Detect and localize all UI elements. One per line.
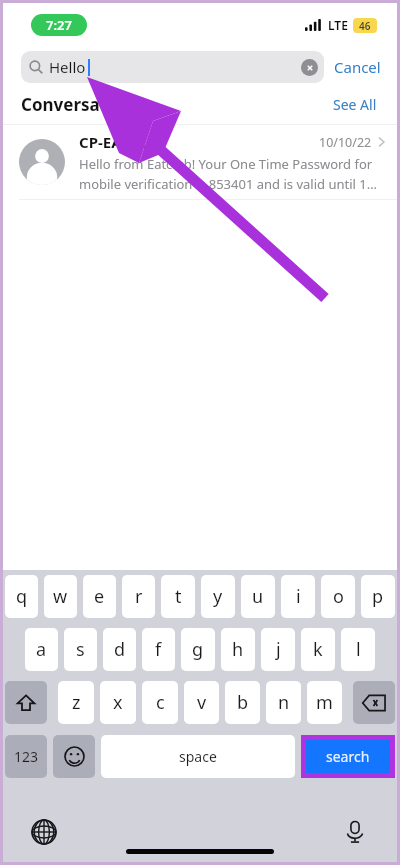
staticText: a: [36, 637, 47, 662]
button[interactable]: w: [44, 575, 77, 618]
button[interactable]: f: [142, 628, 175, 671]
staticText: r: [135, 584, 143, 609]
button[interactable]: search: [306, 740, 390, 773]
staticText: l: [356, 637, 361, 662]
staticText: search: [326, 747, 370, 766]
button[interactable]: Change keyboard language: [31, 819, 57, 845]
staticText: f: [155, 637, 162, 662]
button[interactable]: k: [301, 628, 335, 671]
button[interactable]: y: [201, 575, 235, 618]
button[interactable]: s: [64, 628, 97, 671]
staticText: mobile verification is 853401 and is val…: [79, 175, 377, 193]
staticText: g: [192, 637, 204, 662]
staticText: p: [372, 584, 384, 609]
button[interactable]: Emoji: [53, 735, 95, 778]
staticText: 7:27: [46, 16, 72, 34]
staticText: j: [276, 637, 281, 662]
button[interactable]: Backspace: [353, 681, 395, 724]
staticText: Hello: [49, 57, 86, 77]
staticText: d: [114, 637, 126, 662]
button[interactable]: p: [361, 575, 395, 618]
staticText: y: [213, 584, 223, 609]
button[interactable]: a: [25, 628, 58, 671]
staticText: u: [252, 584, 264, 609]
staticText: n: [278, 690, 290, 715]
button[interactable]: x: [100, 681, 136, 724]
staticText: c: [156, 690, 165, 715]
button[interactable]: Clear text: [301, 59, 318, 76]
staticText: 123: [14, 747, 39, 766]
button[interactable]: See All: [329, 91, 381, 118]
button[interactable]: r: [122, 575, 155, 618]
button[interactable]: c: [142, 681, 178, 724]
button[interactable]: b: [225, 681, 260, 724]
button[interactable]: e: [83, 575, 116, 618]
button[interactable]: d: [103, 628, 136, 671]
button[interactable]: space: [101, 735, 295, 778]
staticText: 46: [359, 19, 371, 33]
staticText: w: [53, 584, 68, 609]
staticText: 10/10/22: [319, 134, 372, 151]
button[interactable]: CP-EATCLB: [3, 125, 397, 199]
button[interactable]: Cancel: [324, 57, 383, 77]
staticText: v: [197, 690, 207, 715]
staticText: Conversations: [21, 93, 143, 116]
button[interactable]: Numbers: [5, 735, 47, 778]
button[interactable]: Shift: [5, 681, 47, 724]
button[interactable]: u: [241, 575, 275, 618]
button[interactable]: Hello: [21, 51, 324, 83]
staticText: Cancel: [334, 57, 381, 77]
button[interactable]: i: [281, 575, 315, 618]
button[interactable]: g: [181, 628, 215, 671]
button[interactable]: l: [341, 628, 375, 671]
staticText: x: [113, 690, 123, 715]
staticText: z: [72, 690, 81, 715]
button[interactable]: v: [184, 681, 219, 724]
staticText: i: [296, 584, 301, 609]
button[interactable]: h: [221, 628, 255, 671]
staticText: q: [16, 584, 28, 609]
staticText: Hello from Eatclub! Your One Time Passwo…: [79, 155, 373, 173]
staticText: CP-EATCLB: [79, 132, 157, 152]
staticText: o: [333, 584, 344, 609]
staticText: k: [313, 637, 323, 662]
staticText: s: [76, 637, 85, 662]
staticText: h: [232, 637, 244, 662]
staticText: e: [94, 584, 105, 609]
button[interactable]: z: [58, 681, 94, 724]
staticText: m: [316, 690, 333, 715]
staticText: t: [175, 584, 182, 609]
staticText: LTE: [328, 17, 348, 33]
button[interactable]: Voice input: [343, 820, 367, 844]
button[interactable]: t: [161, 575, 195, 618]
button[interactable]: j: [261, 628, 295, 671]
button[interactable]: m: [307, 681, 342, 724]
button[interactable]: q: [5, 575, 38, 618]
staticText: b: [237, 690, 249, 715]
staticText: See All: [333, 95, 377, 114]
button[interactable]: n: [266, 681, 301, 724]
staticText: space: [179, 747, 217, 766]
button[interactable]: o: [321, 575, 355, 618]
